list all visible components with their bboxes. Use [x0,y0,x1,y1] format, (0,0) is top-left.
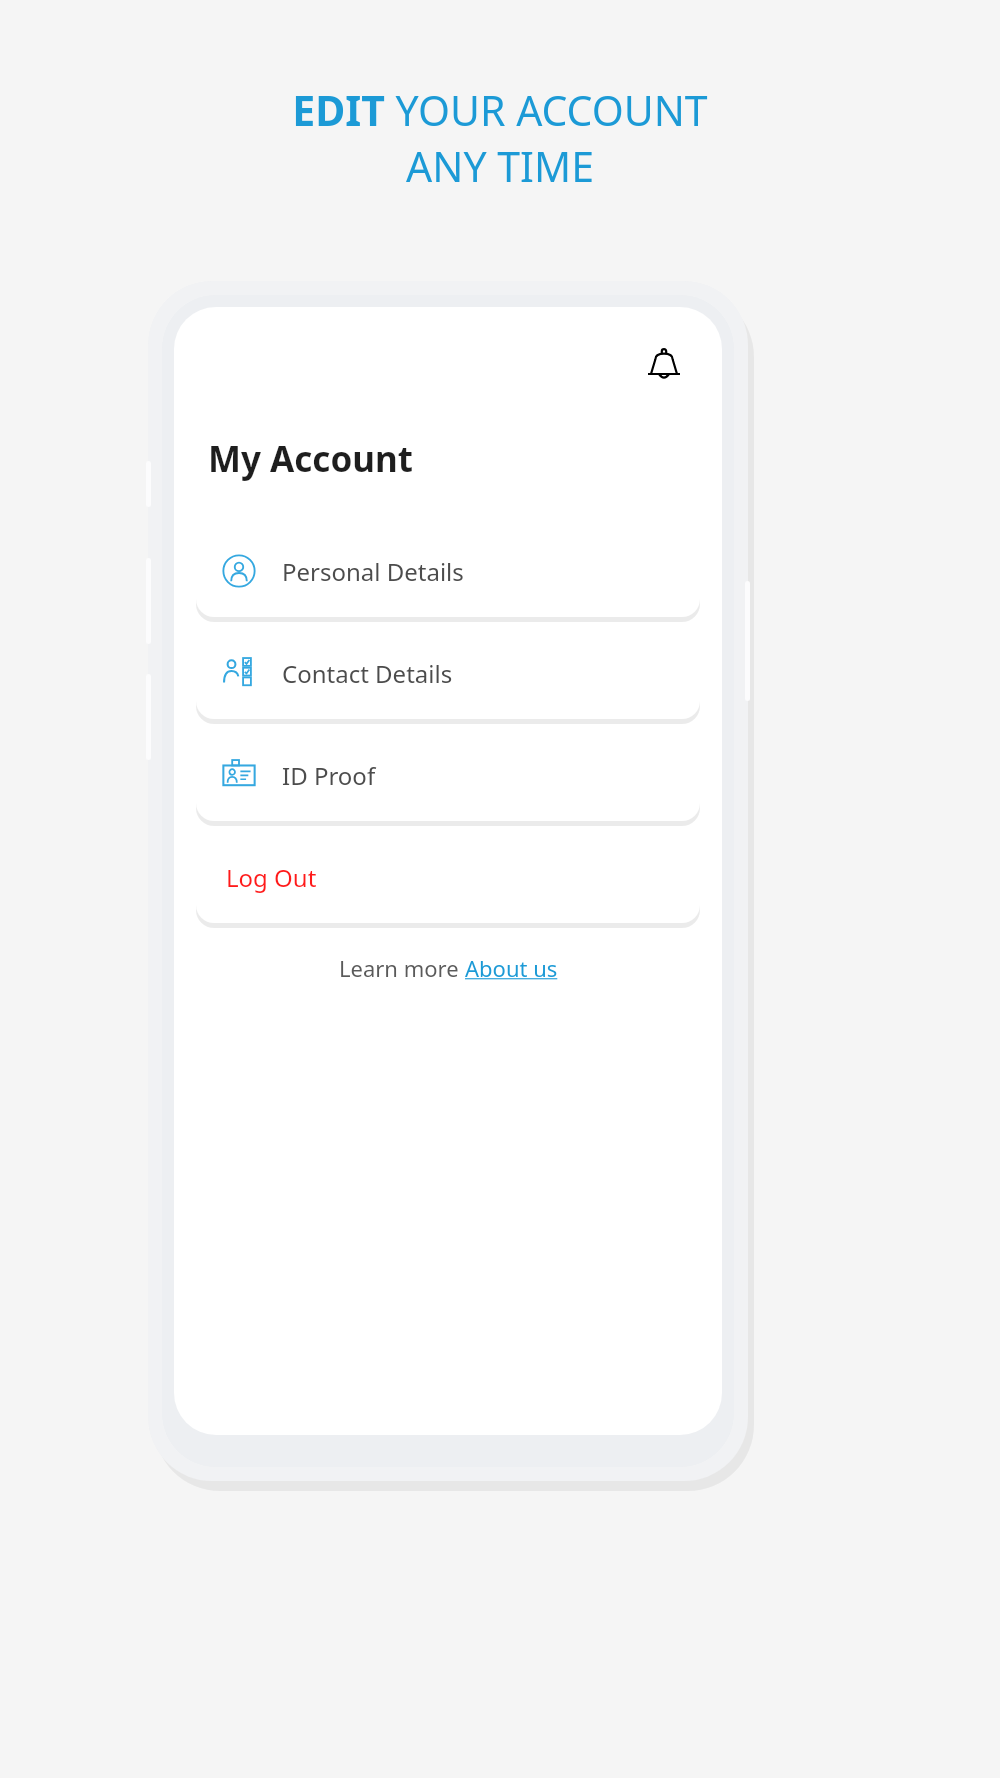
staticText: EDIT YOUR ACCOUNT [292,82,708,138]
button[interactable]: ID Proof [196,729,700,821]
button[interactable]: Notifications [636,338,692,394]
button[interactable]: Personal Details [196,525,700,617]
staticText: ANY TIME [406,138,594,194]
staticText: ID Proof [282,759,376,792]
button[interactable]: Contact Details [196,627,700,719]
staticText: Contact Details [282,657,453,690]
staticText: Personal Details [282,555,464,588]
staticText: Log Out [226,861,317,894]
staticText: About us [465,953,558,983]
staticText: My Account [208,435,413,483]
button[interactable]: Log Out [196,831,700,923]
staticText: Learn more [339,953,465,983]
button[interactable]: About us [465,953,558,983]
